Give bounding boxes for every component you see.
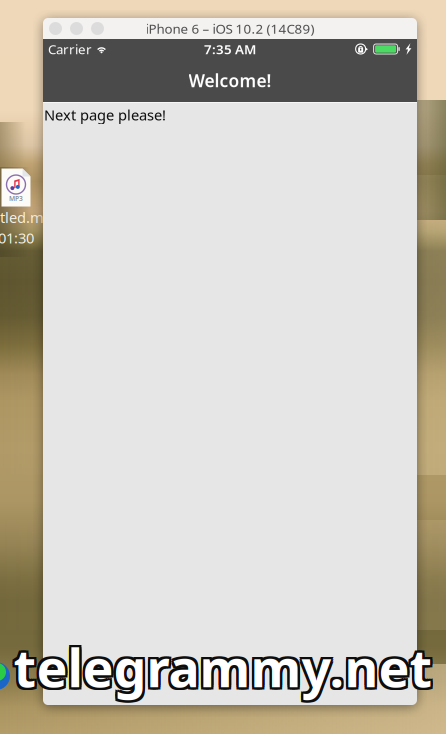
staticText: telegrammy.net <box>13 630 432 699</box>
staticText: 01:30 <box>0 228 34 247</box>
staticText: telegrammy.net <box>11 632 430 702</box>
staticText: Untitled.mp3 <box>0 207 61 227</box>
staticText: telegrammy.net <box>16 632 435 702</box>
button[interactable]: Zoom <box>91 22 104 35</box>
staticText: Carrier <box>48 40 92 58</box>
button[interactable]: Minimize <box>70 22 83 35</box>
button[interactable]: Close <box>49 22 62 35</box>
staticText: iPhone 6 – iOS 10.2 (14C89) <box>145 20 314 37</box>
staticText: telegrammy.net <box>13 632 432 702</box>
staticText: telegrammy.net <box>16 630 435 699</box>
staticText: Welcome! <box>188 69 271 92</box>
staticText: 7:35 AM <box>204 40 256 58</box>
staticText: telegrammy.net <box>11 635 430 704</box>
staticText: Next page please! <box>44 105 166 124</box>
staticText: telegrammy.net <box>11 630 430 699</box>
button[interactable]: Untitled.mp3 <box>0 168 61 247</box>
staticText: telegrammy.net <box>13 635 432 704</box>
staticText: MP3 <box>9 194 23 203</box>
staticText: telegrammy.net <box>16 635 435 704</box>
